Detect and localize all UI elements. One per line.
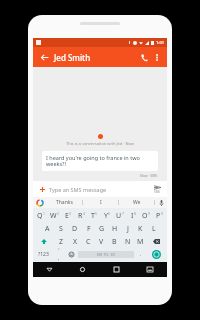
staticText: 0 [161, 211, 164, 216]
staticText: Q [37, 211, 43, 221]
staticText: Z [59, 237, 64, 247]
button[interactable]: Back [33, 262, 66, 277]
button[interactable]: W [48, 209, 62, 222]
button[interactable]: Voice input [155, 197, 167, 208]
staticText: 1:01 [156, 40, 164, 45]
staticText: , [58, 255, 60, 261]
staticText: X [73, 237, 78, 247]
staticText: SMS [154, 190, 161, 194]
button[interactable]: Y [101, 209, 114, 222]
button[interactable]: M [134, 235, 147, 248]
button[interactable]: E [62, 209, 75, 222]
staticText: Thanks [56, 199, 73, 206]
button[interactable]: We [119, 197, 154, 208]
button[interactable]: Add attachment [37, 184, 47, 194]
staticText: 1 [43, 211, 46, 216]
staticText: K [138, 224, 143, 234]
staticText: 3 [69, 211, 72, 216]
button[interactable]: L [147, 222, 160, 235]
staticText: U [116, 211, 122, 221]
button[interactable]: P [153, 209, 166, 222]
staticText: P [156, 211, 161, 221]
button[interactable]: . [135, 248, 147, 261]
staticText: N [125, 237, 131, 247]
button[interactable]: V [95, 235, 108, 248]
button[interactable]: Q [34, 209, 48, 222]
staticText: I [100, 199, 102, 206]
button[interactable]: A [40, 222, 54, 235]
staticText: S [59, 224, 63, 234]
staticText: W [50, 211, 57, 221]
staticText: G [99, 224, 105, 234]
button[interactable]: Call [137, 50, 151, 64]
button[interactable]: Shift [34, 235, 54, 248]
staticText: 7 [122, 211, 125, 216]
button[interactable]: Thanks [47, 197, 82, 208]
button[interactable]: Send message [147, 248, 166, 261]
staticText: 4 [83, 211, 86, 216]
staticText: V [99, 237, 104, 247]
button[interactable]: H [108, 222, 121, 235]
staticText: Type an SMS message [49, 186, 151, 193]
button[interactable]: N [121, 235, 134, 248]
button[interactable]: ˚ [53, 248, 65, 261]
button[interactable]: Space [78, 251, 134, 258]
button[interactable]: Back [37, 50, 51, 64]
staticText: We [133, 199, 141, 206]
staticText: I [131, 211, 134, 221]
button[interactable]: Google [33, 197, 47, 208]
staticText: H [112, 224, 118, 234]
staticText: This is a conversation with Jed · Now [66, 141, 134, 146]
button[interactable]: I [127, 209, 140, 222]
button[interactable]: K [134, 222, 147, 235]
button[interactable]: F [82, 222, 95, 235]
staticText: ˚ [58, 248, 60, 255]
button[interactable]: Keyboard [133, 262, 167, 277]
button[interactable]: O [140, 209, 153, 222]
button[interactable]: More options [151, 51, 163, 63]
button[interactable]: ?123 [34, 248, 53, 261]
button[interactable]: B [108, 235, 121, 248]
staticText: . [140, 251, 142, 258]
staticText: B [112, 237, 117, 247]
staticText: Jed Smith [54, 52, 137, 63]
staticText: Y [104, 211, 108, 221]
button[interactable]: Home [66, 262, 99, 277]
button[interactable]: I heard you're going to france in two we… [42, 151, 158, 171]
button[interactable]: X [68, 235, 82, 248]
staticText: 2 [57, 211, 60, 216]
button[interactable]: J [121, 222, 134, 235]
button[interactable]: C [82, 235, 95, 248]
staticText: ?123 [38, 251, 49, 258]
staticText: F [87, 224, 91, 234]
staticText: I heard you're going to france in two we… [46, 154, 154, 168]
staticText: R [78, 211, 83, 221]
button[interactable]: R [75, 209, 88, 222]
staticText: C [86, 237, 91, 247]
staticText: 6 [108, 211, 111, 216]
button[interactable]: D [68, 222, 82, 235]
staticText: 8 [134, 211, 137, 216]
button[interactable]: Z [54, 235, 68, 248]
button[interactable]: Recents [99, 262, 133, 277]
button[interactable]: S [54, 222, 68, 235]
staticText: D [72, 224, 78, 234]
staticText: L [152, 224, 156, 234]
button[interactable]: Send [151, 185, 163, 194]
staticText: O [142, 211, 148, 221]
staticText: Now · SMS [140, 173, 158, 178]
button[interactable]: G [95, 222, 108, 235]
staticText: 9 [148, 211, 151, 216]
button[interactable]: I [83, 197, 118, 208]
button[interactable]: T [88, 209, 101, 222]
staticText: 5 [95, 211, 98, 216]
staticText: EN · PL · ES [97, 252, 115, 257]
staticText: T [91, 211, 95, 221]
button[interactable]: U [114, 209, 127, 222]
staticText: E [65, 211, 69, 221]
staticText: J [127, 224, 129, 234]
staticText: A [45, 224, 50, 234]
button[interactable]: Backspace [147, 235, 166, 248]
staticText: M [137, 237, 144, 247]
button[interactable]: Emoji [65, 248, 77, 261]
